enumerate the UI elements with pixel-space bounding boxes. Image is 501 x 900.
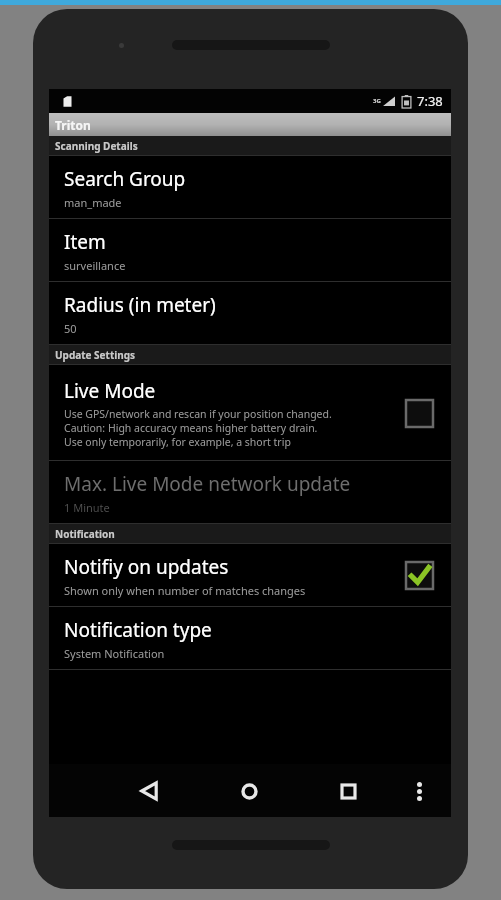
staticText: Notification type xyxy=(64,617,212,643)
staticText: 3G xyxy=(373,97,381,105)
button[interactable]: Recent apps xyxy=(328,771,368,811)
staticText: 7:38 xyxy=(417,92,443,110)
button[interactable]: Home xyxy=(229,771,269,811)
staticText: Use GPS/network and rescan if your posit… xyxy=(64,407,332,421)
staticText: man_made xyxy=(64,195,122,210)
staticText: Scanning Details xyxy=(55,139,138,153)
button[interactable]: Live Mode xyxy=(49,365,451,461)
staticText: Notifiy on updates xyxy=(64,554,229,580)
staticText: Shown only when number of matches change… xyxy=(64,583,306,598)
button[interactable]: Notifiy on updates xyxy=(49,544,451,607)
button[interactable]: More options xyxy=(397,769,441,813)
staticText: Item xyxy=(64,229,106,255)
staticText: Use only temporarily, for example, a sho… xyxy=(64,435,291,449)
button[interactable]: Triton xyxy=(49,113,451,136)
staticText: Triton xyxy=(55,117,91,133)
button[interactable]: Checked xyxy=(404,560,435,591)
staticText: Live Mode xyxy=(64,378,156,404)
button[interactable]: Back xyxy=(129,771,169,811)
staticText: Update Settings xyxy=(55,348,136,362)
staticText: Caution: High accuracy means higher batt… xyxy=(64,421,318,435)
button[interactable]: Search Group xyxy=(49,156,451,219)
staticText: Max. Live Mode network update xyxy=(64,471,351,497)
button[interactable]: Radius (in meter) xyxy=(49,282,451,345)
staticText: 50 xyxy=(64,321,77,336)
staticText: 1 Minute xyxy=(64,500,110,515)
staticText: surveillance xyxy=(64,258,126,273)
staticText: System Notification xyxy=(64,646,165,661)
button[interactable]: Item xyxy=(49,219,451,282)
staticText: Radius (in meter) xyxy=(64,292,216,318)
button[interactable]: Notification type xyxy=(49,607,451,670)
staticText: Search Group xyxy=(64,166,186,192)
staticText: Notification xyxy=(55,527,115,541)
button[interactable]: Unchecked xyxy=(404,398,435,429)
